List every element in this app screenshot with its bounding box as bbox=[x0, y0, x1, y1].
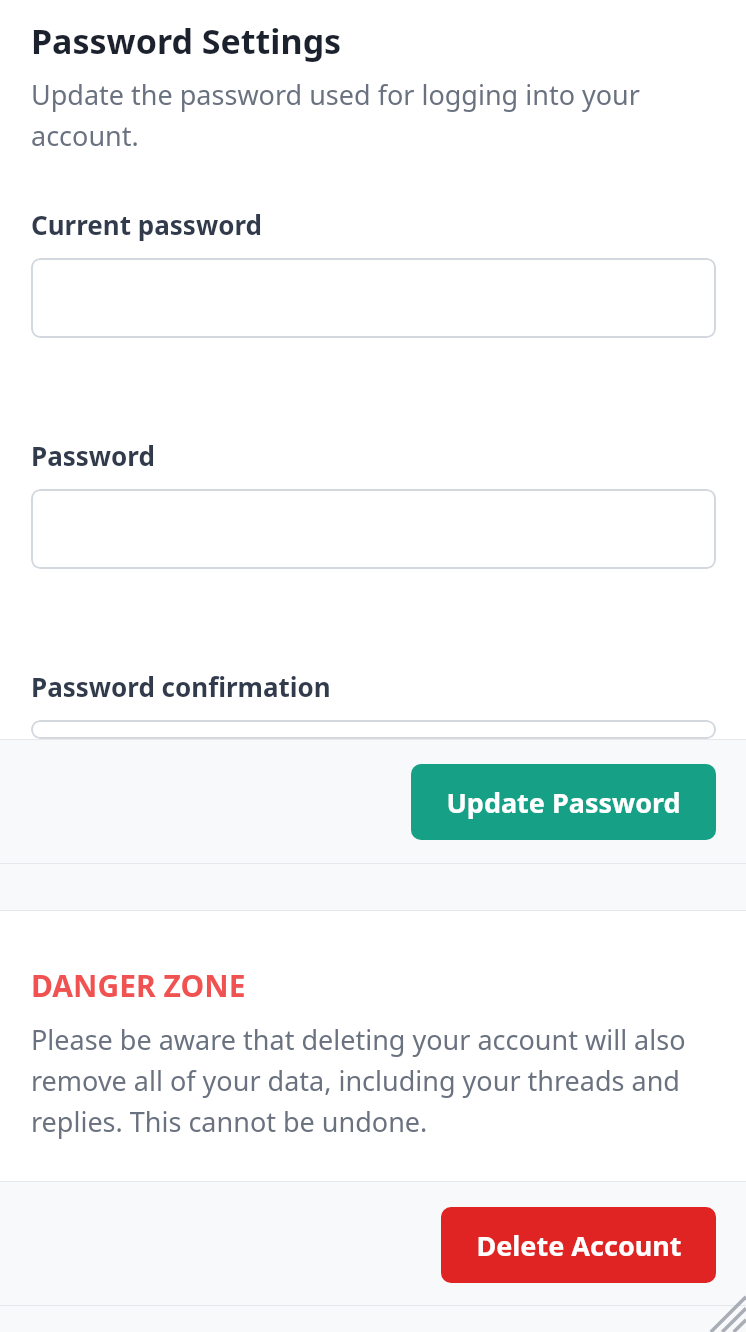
staticText: Update the password used for logging int… bbox=[31, 76, 686, 154]
button[interactable]: Update Password bbox=[411, 764, 716, 840]
button[interactable]: Delete Account bbox=[441, 1207, 716, 1283]
button[interactable] bbox=[31, 720, 716, 739]
staticText: Delete Account bbox=[476, 1227, 682, 1264]
button[interactable] bbox=[31, 489, 716, 569]
staticText: Password Settings bbox=[31, 18, 342, 64]
staticText: DANGER ZONE bbox=[31, 965, 246, 1006]
staticText: Password confirmation bbox=[31, 669, 331, 704]
staticText: Update Password bbox=[446, 784, 681, 821]
staticText: Password bbox=[31, 438, 155, 473]
button[interactable]: Resize bbox=[702, 1288, 746, 1332]
staticText: Please be aware that deleting your accou… bbox=[31, 1021, 718, 1140]
button[interactable] bbox=[31, 258, 716, 338]
staticText: Current password bbox=[31, 207, 262, 242]
